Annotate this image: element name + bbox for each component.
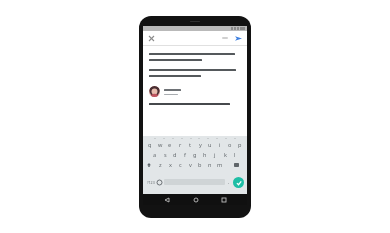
button[interactable]: d bbox=[170, 150, 180, 160]
button[interactable]: ?123 bbox=[145, 170, 156, 194]
button[interactable]: s bbox=[160, 150, 170, 160]
button[interactable]: c bbox=[175, 160, 185, 170]
staticText: d bbox=[173, 151, 177, 159]
button[interactable]: x bbox=[165, 160, 175, 170]
staticText: z bbox=[159, 161, 162, 169]
button[interactable]: Close bbox=[147, 34, 156, 43]
button[interactable]: o bbox=[225, 140, 235, 150]
button[interactable]: Send message bbox=[233, 177, 244, 188]
button[interactable]: u bbox=[205, 140, 215, 150]
button[interactable]: y bbox=[195, 140, 205, 150]
button[interactable]: b bbox=[195, 160, 205, 170]
staticText: w bbox=[158, 141, 163, 149]
staticText: . bbox=[228, 179, 230, 186]
staticText: a bbox=[153, 151, 157, 159]
button[interactable]: Home bbox=[190, 194, 201, 205]
button[interactable]: m bbox=[215, 160, 225, 170]
button[interactable]: k bbox=[220, 150, 230, 160]
button[interactable]: e bbox=[165, 140, 175, 150]
staticText: v bbox=[189, 161, 192, 169]
button[interactable]: f bbox=[180, 150, 190, 160]
staticText: n bbox=[208, 161, 212, 169]
staticText: e bbox=[168, 141, 172, 149]
staticText: y bbox=[199, 141, 202, 149]
staticText: j bbox=[214, 151, 216, 159]
staticText: t bbox=[189, 141, 192, 149]
staticText: p bbox=[238, 141, 242, 149]
staticText: b bbox=[198, 161, 202, 169]
staticText: i bbox=[219, 141, 221, 149]
staticText: o bbox=[228, 141, 232, 149]
staticText: c bbox=[179, 161, 182, 169]
button[interactable]: r bbox=[175, 140, 185, 150]
staticText: g bbox=[193, 151, 197, 159]
staticText: k bbox=[224, 151, 227, 159]
staticText: q bbox=[148, 141, 152, 149]
button[interactable]: j bbox=[210, 150, 220, 160]
button[interactable]: v bbox=[185, 160, 195, 170]
staticText: ?123 bbox=[147, 180, 155, 185]
button[interactable]: q bbox=[145, 140, 155, 150]
button[interactable]: n bbox=[205, 160, 215, 170]
staticText: r bbox=[179, 141, 182, 149]
button[interactable]: Shift bbox=[143, 160, 155, 170]
staticText: u bbox=[208, 141, 212, 149]
staticText: m bbox=[217, 161, 223, 169]
button[interactable]: Send bbox=[233, 33, 243, 43]
staticText: h bbox=[203, 151, 207, 159]
button[interactable]: i bbox=[215, 140, 225, 150]
staticText: f bbox=[184, 151, 186, 159]
button[interactable]: p bbox=[235, 140, 245, 150]
staticText: x bbox=[169, 161, 172, 169]
button[interactable]: z bbox=[155, 160, 165, 170]
button[interactable]: Recents bbox=[218, 194, 229, 205]
button[interactable]: Backspace bbox=[225, 160, 247, 170]
staticText: s bbox=[164, 151, 167, 159]
button[interactable]: a bbox=[150, 150, 160, 160]
staticText: l bbox=[234, 151, 236, 159]
button[interactable]: h bbox=[200, 150, 210, 160]
button[interactable]: Back bbox=[161, 194, 172, 205]
button[interactable]: Emoji bbox=[156, 179, 162, 185]
button[interactable]: g bbox=[190, 150, 200, 160]
button[interactable]: w bbox=[155, 140, 165, 150]
button[interactable]: t bbox=[185, 140, 195, 150]
button[interactable]: l bbox=[230, 150, 240, 160]
